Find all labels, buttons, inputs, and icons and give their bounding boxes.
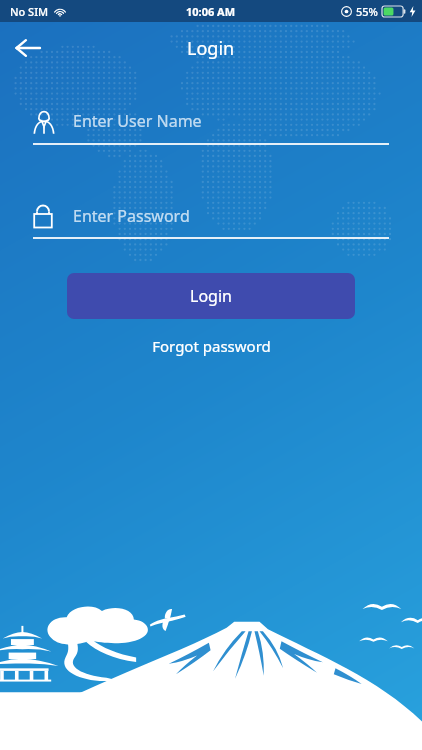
button[interactable]: Back bbox=[6, 26, 50, 70]
staticText: Enter User Name bbox=[73, 110, 202, 132]
button[interactable]: Enter Password bbox=[33, 203, 389, 239]
button[interactable]: Login bbox=[67, 273, 355, 319]
staticText: Forgot password bbox=[152, 336, 271, 356]
button[interactable]: Enter User Name bbox=[33, 108, 389, 145]
staticText: No SIM bbox=[10, 4, 49, 19]
button[interactable]: Forgot password bbox=[138, 330, 285, 362]
staticText: Enter Password bbox=[73, 205, 190, 227]
staticText: Login bbox=[190, 285, 232, 307]
staticText: 55% bbox=[356, 4, 378, 19]
staticText: Login bbox=[187, 36, 235, 61]
staticText: 10:06 AM bbox=[186, 4, 236, 19]
